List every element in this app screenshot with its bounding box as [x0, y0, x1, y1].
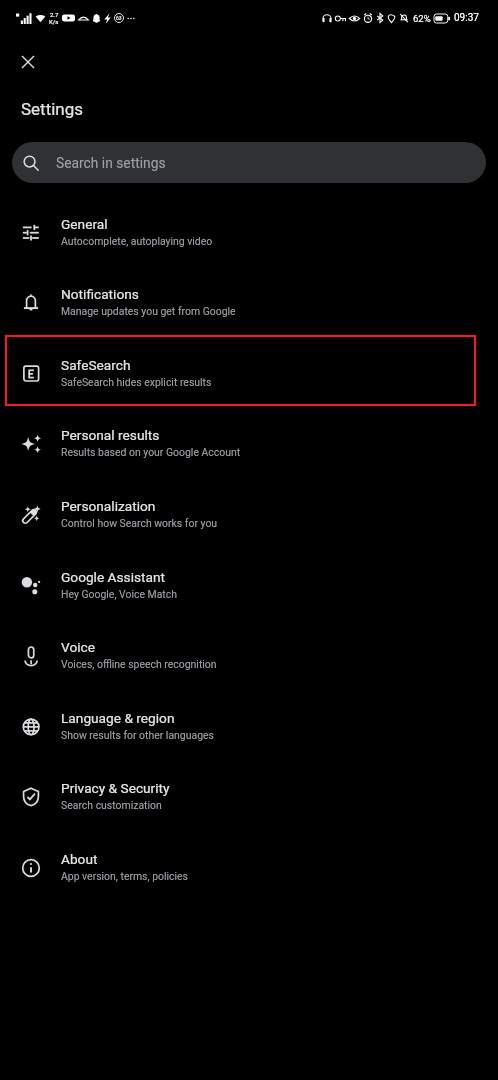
staticText: App version, terms, policies — [61, 870, 188, 882]
staticText: Personalization — [61, 498, 156, 514]
button[interactable]: Voice — [0, 624, 498, 695]
staticText: 09:37 — [454, 12, 479, 24]
staticText: Google Assistant — [61, 569, 166, 585]
staticText: Search in settings — [56, 155, 166, 171]
staticText: Voice — [61, 639, 95, 655]
staticText: Autocomplete, autoplaying video — [61, 235, 213, 247]
staticText: Privacy & Security — [61, 780, 170, 796]
button[interactable]: Language & region — [0, 695, 498, 766]
button[interactable]: General — [0, 201, 498, 272]
staticText: Manage updates you get from Google — [61, 305, 236, 317]
button[interactable]: Personal results — [0, 412, 498, 483]
staticText: 63 — [116, 15, 122, 21]
staticText: 2.7 — [50, 11, 59, 18]
staticText: Voices, offline speech recognition — [61, 658, 217, 670]
button[interactable]: Notifications — [0, 271, 498, 342]
staticText: General — [61, 216, 108, 232]
staticText: K/s — [49, 18, 59, 25]
staticText: Results based on your Google Account — [61, 446, 241, 458]
staticText: SafeSearch hides explicit results — [61, 376, 212, 388]
button[interactable]: Close — [14, 48, 42, 76]
button[interactable]: About — [0, 836, 498, 907]
staticText: Control how Search works for you — [61, 517, 218, 529]
staticText: About — [61, 851, 98, 867]
staticText: Settings — [21, 99, 84, 119]
button[interactable]: Privacy & Security — [0, 765, 498, 836]
staticText: Show results for other languages — [61, 729, 214, 741]
staticText: Search customization — [61, 799, 162, 811]
staticText: Hey Google, Voice Match — [61, 588, 177, 600]
staticText: Language & region — [61, 710, 175, 726]
staticText: Personal results — [61, 427, 160, 443]
staticText: Notifications — [61, 286, 139, 302]
button[interactable]: Google Assistant — [0, 554, 498, 625]
staticText: 62% — [413, 13, 431, 24]
staticText: SafeSearch — [61, 357, 131, 373]
button[interactable]: Search in settings — [12, 142, 486, 183]
button[interactable]: SafeSearch — [0, 342, 498, 413]
button[interactable]: Personalization — [0, 483, 498, 554]
